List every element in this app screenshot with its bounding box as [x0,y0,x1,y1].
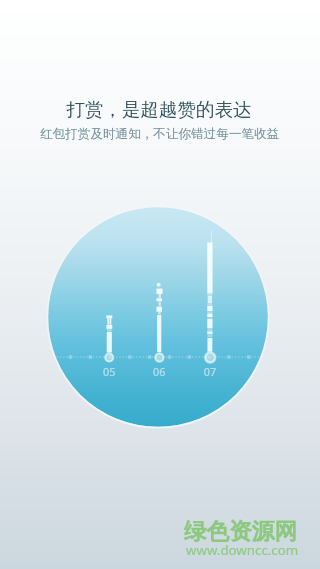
button[interactable] [0,0,320,569]
